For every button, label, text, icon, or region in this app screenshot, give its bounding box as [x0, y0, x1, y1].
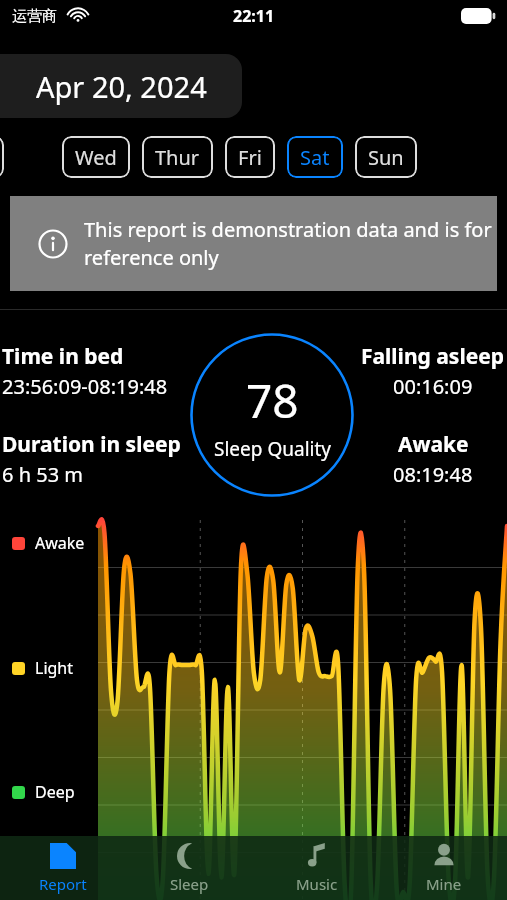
staticText: Light [35, 657, 74, 679]
staticText: Thur [155, 144, 200, 171]
staticText: Music [296, 874, 338, 894]
staticText: 23:56:09-08:19:48 [2, 373, 168, 400]
button[interactable]: Fri [225, 136, 275, 178]
button[interactable]: This report is demonstration data and is… [10, 196, 497, 291]
staticText: Duration in sleep [2, 430, 181, 459]
button[interactable]: Report [0, 836, 126, 900]
button[interactable]: Thur [142, 136, 213, 178]
staticText: Wed [75, 144, 117, 171]
staticText: Sat [300, 144, 330, 171]
staticText: Sleep [170, 874, 209, 894]
button[interactable]: Apr 20, 2024 [0, 54, 242, 118]
staticText: 08:19:48 [393, 461, 473, 488]
button[interactable]: Mine [380, 836, 507, 900]
staticText: 运营商 [12, 7, 57, 26]
staticText: 78 [246, 369, 299, 432]
staticText: Fri [238, 144, 262, 171]
button[interactable]: Music [253, 836, 380, 900]
staticText: This report is demonstration data and is… [84, 216, 497, 271]
button[interactable]: Sun [355, 136, 417, 178]
button[interactable]: Tue [0, 136, 4, 178]
button[interactable]: Sleep [126, 836, 253, 900]
staticText: 00:16:09 [393, 373, 473, 400]
button[interactable]: Sat [287, 136, 343, 178]
staticText: 22:11 [233, 5, 275, 27]
staticText: Deep [35, 781, 75, 803]
staticText: Time in bed [2, 342, 124, 371]
staticText: Awake [35, 532, 85, 554]
button[interactable]: Wed [62, 136, 130, 178]
staticText: 6 h 53 m [2, 461, 83, 488]
staticText: Mine [426, 874, 462, 894]
staticText: Apr 20, 2024 [36, 67, 207, 106]
staticText: Report [39, 874, 87, 894]
staticText: Sun [368, 144, 404, 171]
staticText: Awake [398, 430, 469, 459]
staticText: Sleep Quality [214, 436, 331, 462]
staticText: Falling asleep [361, 342, 505, 371]
